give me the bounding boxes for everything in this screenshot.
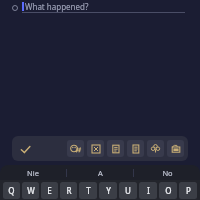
- button[interactable]: Q: [3, 182, 20, 199]
- staticText: Y: [106, 185, 111, 196]
- button[interactable]: U: [119, 182, 137, 199]
- staticText: Nie: [27, 168, 39, 178]
- button[interactable]: O: [159, 182, 177, 199]
- button[interactable]: E: [41, 182, 58, 199]
- staticText: No: [162, 168, 173, 178]
- staticText: P: [186, 185, 191, 196]
- staticText: E: [47, 185, 52, 196]
- staticText: What happened?: [25, 1, 89, 12]
- button[interactable]: Language: [0, 0, 200, 18]
- button[interactable]: Accept suggestion: [16, 140, 34, 158]
- button[interactable]: Voice input: [107, 140, 124, 157]
- staticText: T: [86, 185, 91, 196]
- button[interactable]: Y: [99, 182, 117, 199]
- staticText: I: [147, 185, 150, 196]
- button[interactable]: No: [134, 165, 200, 180]
- other: Language: [12, 5, 18, 11]
- button[interactable]: Handwriting: [87, 140, 104, 157]
- staticText: Q: [8, 185, 15, 196]
- staticText: R: [66, 185, 72, 196]
- button[interactable]: A: [67, 165, 133, 180]
- staticText: A: [98, 168, 103, 178]
- button[interactable]: W: [22, 182, 39, 199]
- staticText: O: [165, 185, 172, 196]
- button[interactable]: T: [79, 182, 97, 199]
- button[interactable]: P: [179, 182, 197, 199]
- staticText: U: [125, 185, 131, 196]
- button[interactable]: I: [139, 182, 157, 199]
- button[interactable]: Emoji and symbols: [67, 140, 84, 157]
- button[interactable]: Clipboard: [127, 140, 144, 157]
- button[interactable]: R: [60, 182, 77, 199]
- button[interactable]: Translate: [147, 140, 164, 157]
- staticText: W: [27, 185, 35, 196]
- button[interactable]: Settings: [167, 140, 184, 157]
- button[interactable]: Nie: [0, 165, 66, 180]
